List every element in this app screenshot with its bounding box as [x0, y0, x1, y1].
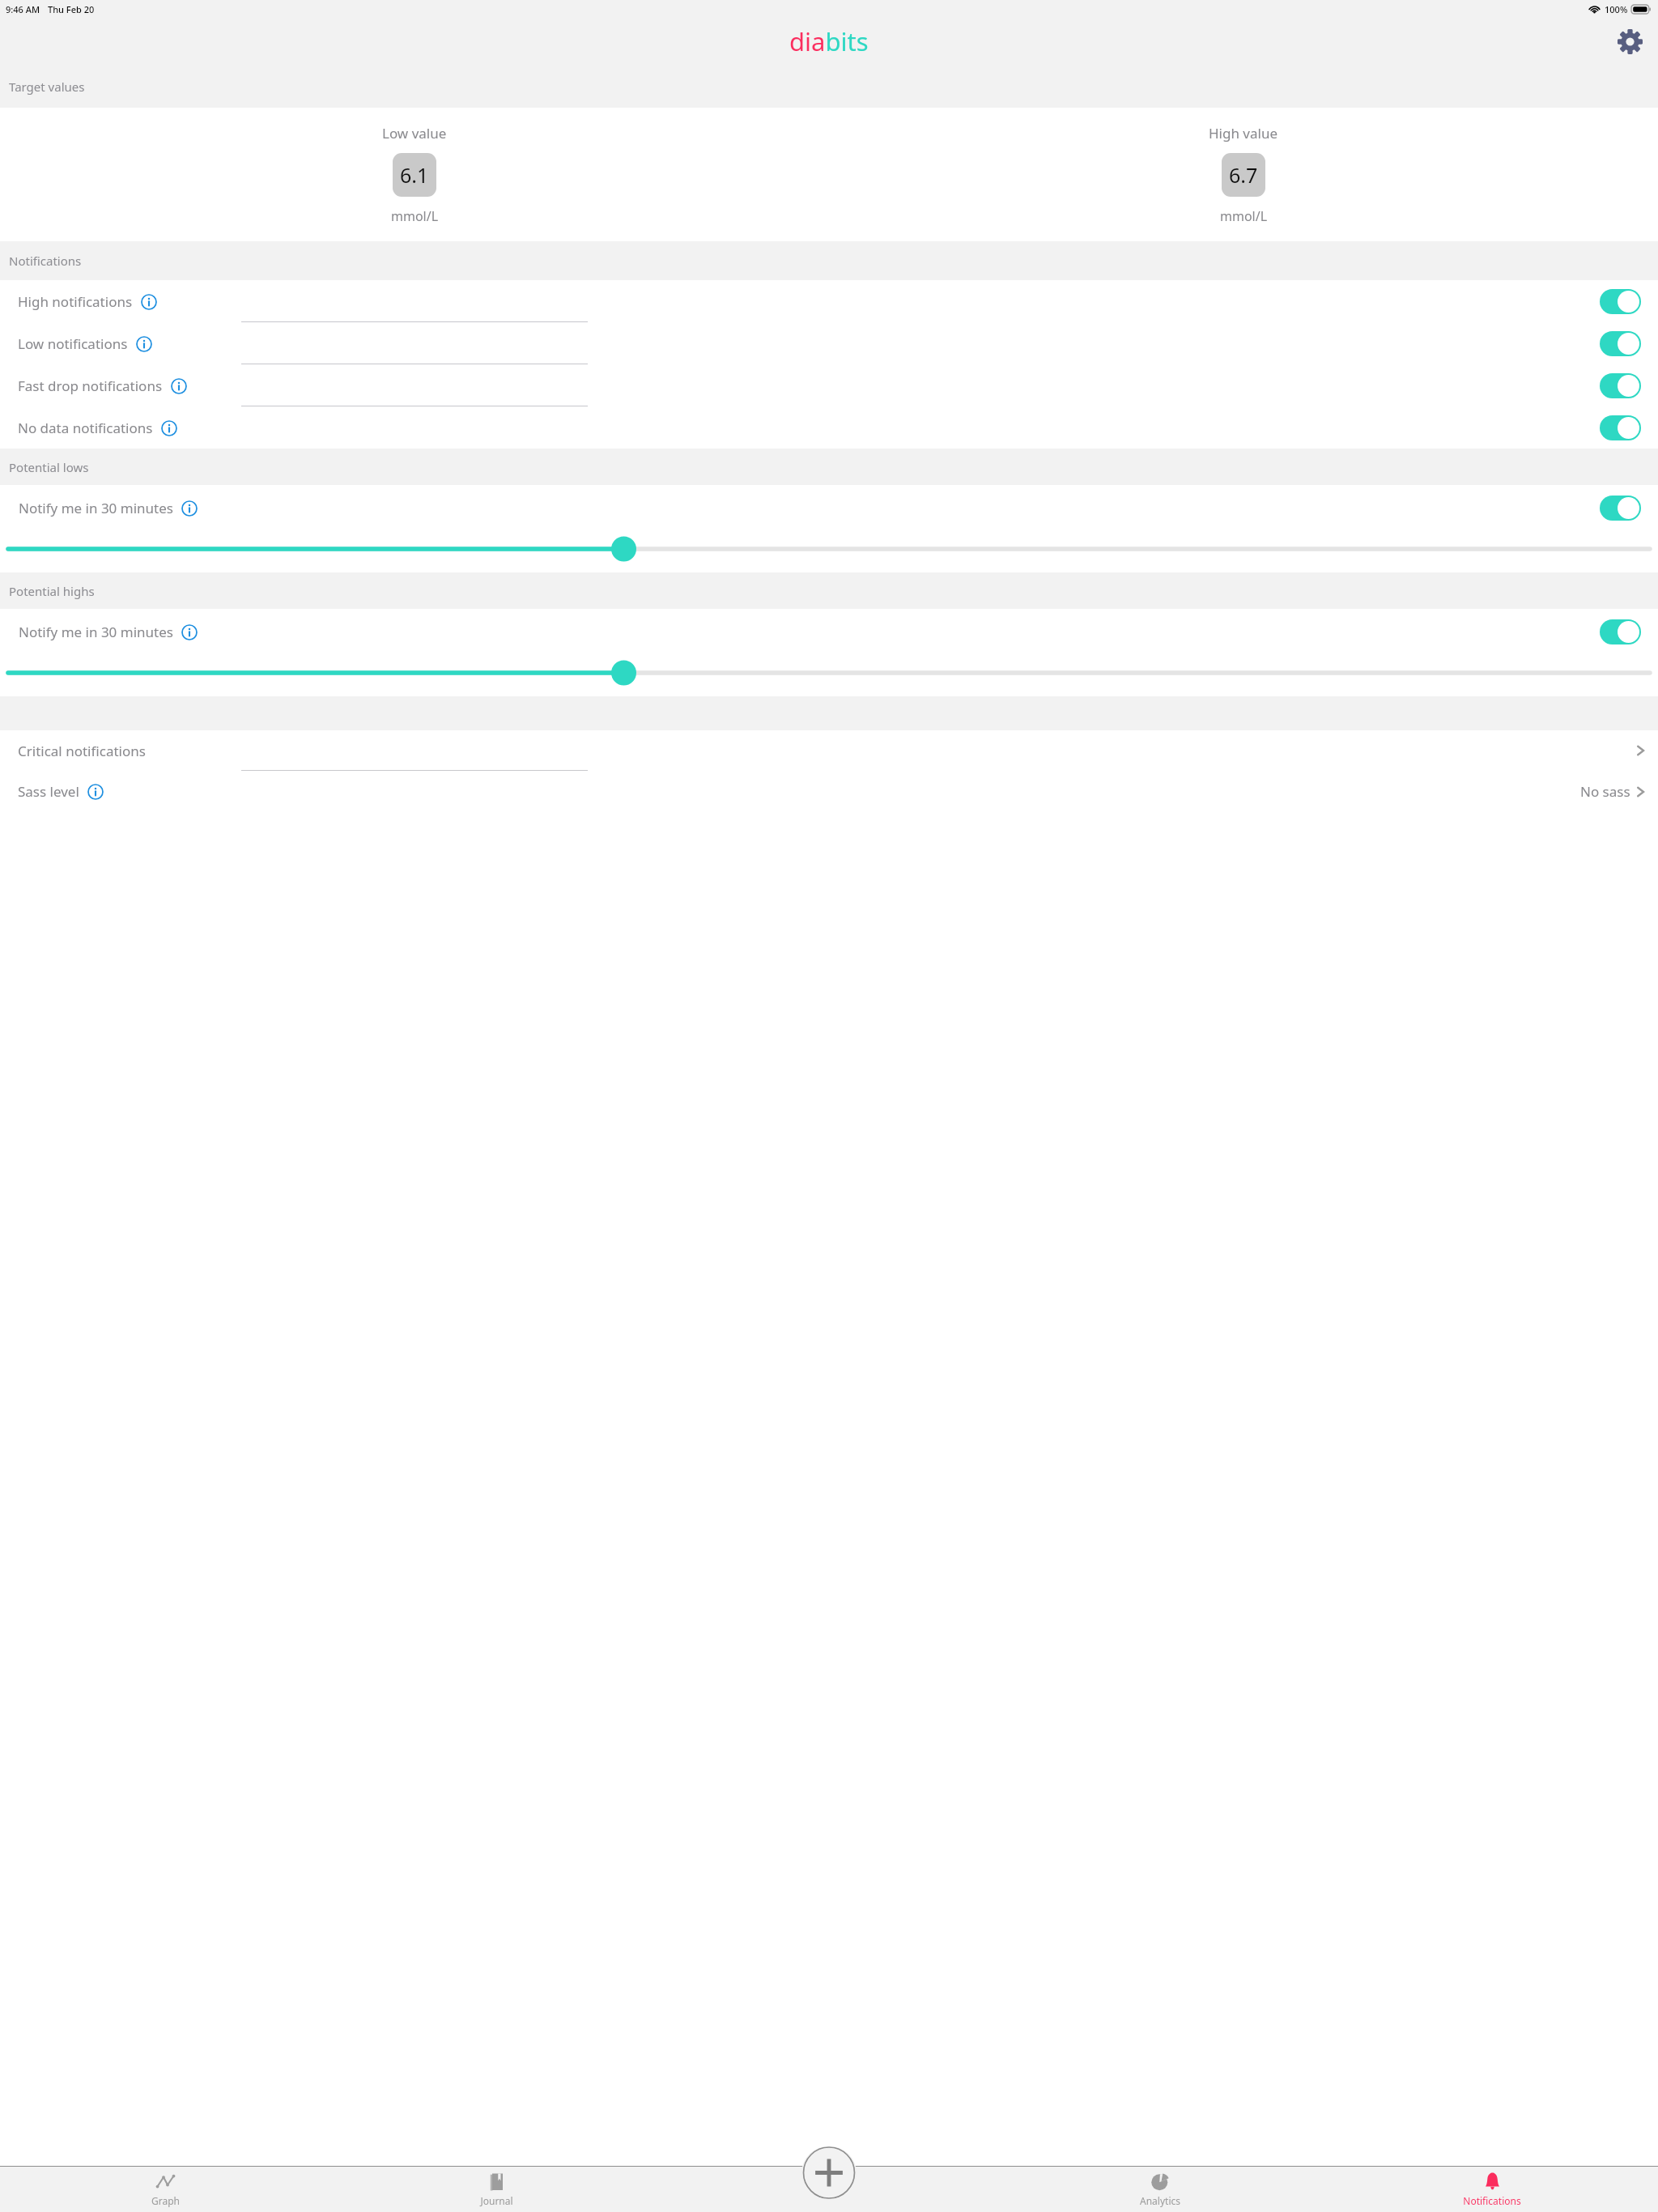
- button[interactable]: More info: [160, 419, 178, 437]
- button[interactable]: Graph: [0, 2167, 331, 2212]
- staticText: High notifications: [18, 292, 133, 311]
- staticText: Notify me in 30 minutes: [19, 499, 173, 517]
- staticText: mmol/L: [1220, 207, 1268, 225]
- button[interactable]: Sass level: [0, 771, 1658, 811]
- staticText: Low value: [382, 124, 447, 143]
- staticText: No sass: [1580, 782, 1630, 801]
- button[interactable]: Add entry: [801, 2146, 857, 2199]
- button[interactable]: On: [1600, 373, 1641, 398]
- button[interactable]: Low value: [371, 121, 458, 228]
- staticText: Potential highs: [9, 583, 95, 599]
- staticText: Journal: [480, 2194, 513, 2207]
- staticText: 6.7: [1229, 161, 1258, 189]
- button[interactable]: High notifications: [0, 280, 1658, 322]
- staticText: 9:46 AM: [6, 3, 40, 15]
- staticText: Notify me in 30 minutes: [19, 623, 173, 641]
- button[interactable]: More info: [170, 377, 188, 395]
- button[interactable]: More info: [181, 623, 198, 641]
- staticText: 100%: [1605, 3, 1628, 15]
- button[interactable]: More info: [87, 783, 104, 801]
- staticText: Thu Feb 20: [48, 3, 95, 15]
- staticText: Potential lows: [9, 459, 89, 475]
- staticText: diabits: [789, 24, 869, 58]
- staticText: High value: [1209, 124, 1278, 143]
- staticText: Notifications: [9, 253, 82, 269]
- button[interactable]: Low notifications: [0, 322, 1658, 364]
- button[interactable]: More info: [140, 293, 158, 311]
- button[interactable]: On: [1600, 289, 1641, 314]
- button[interactable]: High value: [1197, 121, 1290, 228]
- staticText: Low notifications: [18, 334, 128, 353]
- staticText: Notifications: [1463, 2194, 1521, 2207]
- button[interactable]: More info: [181, 500, 198, 517]
- button[interactable]: Minutes slider: [0, 530, 1658, 568]
- button[interactable]: On: [1600, 619, 1641, 644]
- button[interactable]: Critical notifications: [0, 730, 1658, 771]
- button[interactable]: Fast drop notifications: [0, 364, 1658, 406]
- staticText: Critical notifications: [18, 742, 146, 760]
- button[interactable]: Settings: [1612, 23, 1647, 59]
- button[interactable]: Journal: [331, 2167, 662, 2212]
- staticText: 6.1: [400, 161, 429, 189]
- staticText: No data notifications: [18, 419, 153, 437]
- button[interactable]: Notifications: [1326, 2167, 1658, 2212]
- button[interactable]: Minutes slider: [0, 654, 1658, 691]
- staticText: mmol/L: [391, 207, 439, 225]
- staticText: Sass level: [18, 782, 79, 801]
- button[interactable]: More info: [135, 335, 153, 353]
- staticText: Analytics: [1140, 2194, 1180, 2207]
- button[interactable]: Notify me in 30 minutes: [0, 609, 1658, 654]
- button[interactable]: Notify me in 30 minutes: [0, 485, 1658, 530]
- button[interactable]: On: [1600, 496, 1641, 521]
- staticText: Graph: [151, 2194, 180, 2207]
- staticText: Target values: [9, 79, 85, 95]
- button[interactable]: On: [1600, 331, 1641, 356]
- button[interactable]: On: [1600, 415, 1641, 440]
- button[interactable]: No data notifications: [0, 406, 1658, 449]
- staticText: Fast drop notifications: [18, 376, 163, 395]
- button[interactable]: Analytics: [994, 2167, 1326, 2212]
